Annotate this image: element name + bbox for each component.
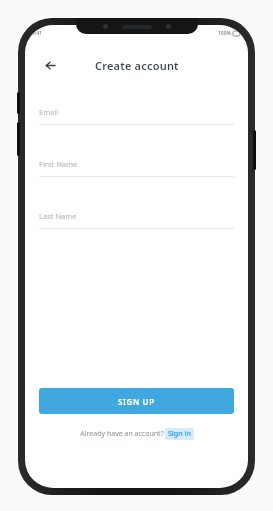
staticText: Last Name [39,211,77,221]
button[interactable]: Last Name [39,211,234,229]
button[interactable]: Back [37,52,63,78]
staticText: Sign in [168,429,191,439]
staticText: Already have an account? [79,429,165,439]
button[interactable]: SIGN UP [39,388,234,414]
button[interactable]: Email [39,107,234,125]
staticText: 100% [218,30,231,37]
staticText: SIGN UP [118,396,155,407]
staticText: 9:41 [32,30,42,37]
staticText: First Name [39,159,78,169]
button[interactable]: First Name [39,159,234,177]
staticText: Create account [95,58,179,73]
staticText: Email [39,107,59,117]
button[interactable]: Already have an account? [25,428,248,440]
